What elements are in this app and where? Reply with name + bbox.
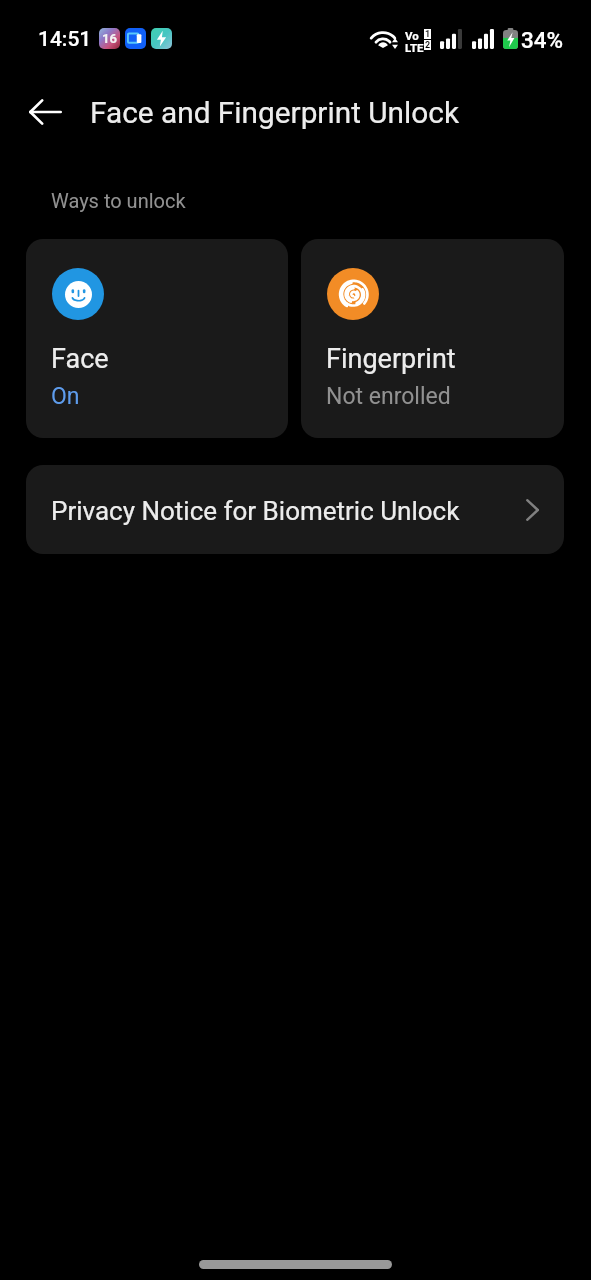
staticText: Face — [51, 343, 109, 375]
staticText: LTE — [405, 41, 424, 54]
staticText: 2 — [425, 40, 431, 50]
staticText: 1 — [425, 29, 431, 39]
staticText: Privacy Notice for Biometric Unlock — [51, 496, 460, 526]
staticText: Fingerprint — [326, 343, 456, 375]
staticText: Face and Fingerprint Unlock — [90, 95, 460, 130]
staticText: 34% — [521, 27, 564, 53]
staticText: 14:51 — [38, 27, 92, 52]
staticText: Ways to unlock — [51, 189, 186, 212]
button[interactable]: Face — [26, 239, 288, 438]
staticText: Not enrolled — [326, 383, 451, 410]
staticText: Vo — [405, 29, 419, 42]
button[interactable]: Back — [22, 89, 68, 135]
staticText: 16 — [102, 31, 117, 46]
staticText: On — [51, 383, 80, 410]
button[interactable]: Privacy Notice for Biometric Unlock — [26, 465, 564, 554]
button[interactable]: Fingerprint — [301, 239, 564, 438]
